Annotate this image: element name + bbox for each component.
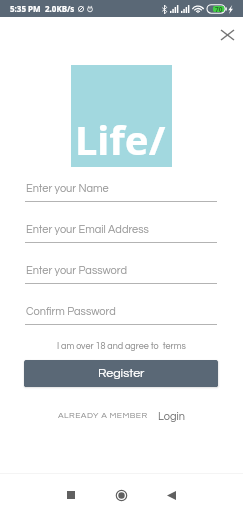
staticText: 2.0KB/s: [45, 3, 75, 14]
staticText: Login: [158, 411, 185, 422]
button[interactable]: Back: [163, 487, 179, 503]
staticText: ALREADY A MEMBER: [58, 411, 148, 420]
button[interactable]: Recents: [63, 487, 79, 503]
staticText: Enter your Name: [26, 183, 109, 194]
staticText: Enter your Email Address: [26, 224, 149, 235]
staticText: Life/: [75, 112, 166, 166]
button[interactable]: Home: [113, 487, 129, 503]
button[interactable]: Register: [24, 360, 218, 387]
button[interactable]: Close: [214, 23, 240, 47]
staticText: Enter your Password: [26, 265, 128, 276]
staticText: Register: [98, 367, 145, 380]
staticText: I am over 18 and agree to terms: [57, 342, 186, 351]
staticText: Confirm Password: [26, 306, 116, 317]
staticText: 5:35 PM: [10, 3, 41, 14]
staticText: 70: [215, 5, 223, 14]
button[interactable]: Login: [158, 411, 185, 422]
